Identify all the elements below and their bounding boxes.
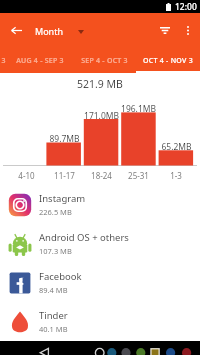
staticText: AUG 4 - SEP 3: [16, 56, 64, 66]
staticText: Instagram: [39, 192, 86, 205]
button[interactable]: More options: [177, 16, 198, 45]
staticText: 521.9 MB: [77, 77, 123, 91]
button[interactable]: Filter: [152, 16, 178, 45]
staticText: SEP 4 - OCT 3: [81, 56, 128, 66]
staticText: 107.3 MB: [39, 246, 72, 256]
button[interactable]: Back: [28, 341, 60, 355]
staticText: 65.2MB: [161, 141, 192, 153]
staticText: Android OS + others: [39, 231, 129, 244]
button[interactable]: SEP 4 - OCT 3: [72, 48, 136, 73]
staticText: JUL 4 - AUG 3: [0, 56, 6, 66]
staticText: 1-3: [170, 170, 182, 181]
staticText: Tinder: [39, 309, 68, 322]
staticText: 25-31: [128, 170, 149, 181]
staticText: 12:00: [175, 1, 197, 13]
button[interactable]: Month: [32, 16, 88, 45]
button[interactable]: AUG 4 - SEP 3: [8, 48, 72, 73]
staticText: Month: [35, 25, 63, 37]
button[interactable]: OCT 4 - NOV 3: [136, 48, 200, 73]
button[interactable]: Instagram: [0, 185, 200, 224]
staticText: 196.1MB: [121, 103, 156, 115]
button[interactable]: Facebook: [0, 263, 200, 302]
button[interactable]: Home: [84, 341, 116, 355]
staticText: 226.5 MB: [39, 207, 72, 217]
staticText: 89.7MB: [49, 133, 80, 145]
staticText: 18-24: [91, 170, 112, 181]
button[interactable]: JUL 4 - AUG 3: [0, 48, 14, 73]
staticText: 40.1 MB: [39, 324, 68, 334]
staticText: Facebook: [39, 270, 82, 283]
staticText: OCT 4 - NOV 3: [143, 56, 193, 66]
staticText: 11-17: [54, 170, 75, 181]
staticText: 171.0MB: [84, 110, 119, 122]
button[interactable]: Tinder: [0, 302, 200, 341]
staticText: 4-10: [18, 170, 35, 181]
staticText: 89.4 MB: [39, 285, 68, 295]
button[interactable]: Back: [0, 16, 32, 45]
button[interactable]: Android OS + others: [0, 224, 200, 263]
